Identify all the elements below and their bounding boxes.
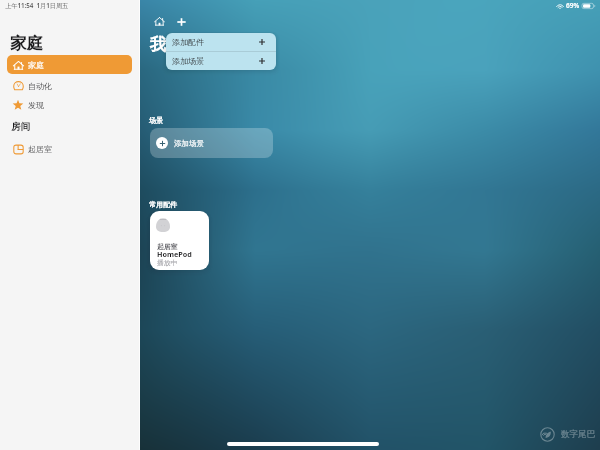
staticText: 起居室	[157, 242, 178, 251]
staticText: 数字尾巴	[561, 429, 595, 440]
staticText: 播放中	[157, 258, 178, 267]
staticText: 添加场景	[174, 139, 204, 148]
button[interactable]: 自动化	[7, 76, 132, 95]
button[interactable]: Add	[174, 14, 189, 29]
staticText: 69%	[566, 1, 580, 10]
button[interactable]: 起居室	[7, 139, 132, 158]
staticText: 家庭	[10, 33, 43, 54]
staticText: HomePod	[157, 249, 192, 259]
staticText: 添加场景	[172, 56, 204, 66]
button[interactable]: 添加配件	[166, 33, 276, 51]
staticText: 上午11:54 1月1日周五	[5, 1, 69, 9]
button[interactable]: 添加场景	[150, 128, 273, 158]
button[interactable]: 起居室	[150, 211, 209, 270]
button[interactable]: 家庭	[7, 55, 132, 74]
staticText: 家庭	[28, 60, 44, 70]
staticText: 场景	[149, 116, 163, 125]
staticText: 常用配件	[149, 200, 177, 209]
staticText: 房间	[11, 121, 30, 133]
staticText: 添加配件	[172, 37, 204, 47]
staticText: 自动化	[28, 81, 52, 91]
button[interactable]: Home	[152, 14, 167, 29]
button[interactable]: 发现	[7, 95, 132, 114]
button[interactable]: 添加场景	[166, 52, 276, 70]
staticText: 起居室	[28, 144, 52, 154]
staticText: 发现	[28, 100, 44, 110]
staticText: 我	[150, 34, 167, 55]
